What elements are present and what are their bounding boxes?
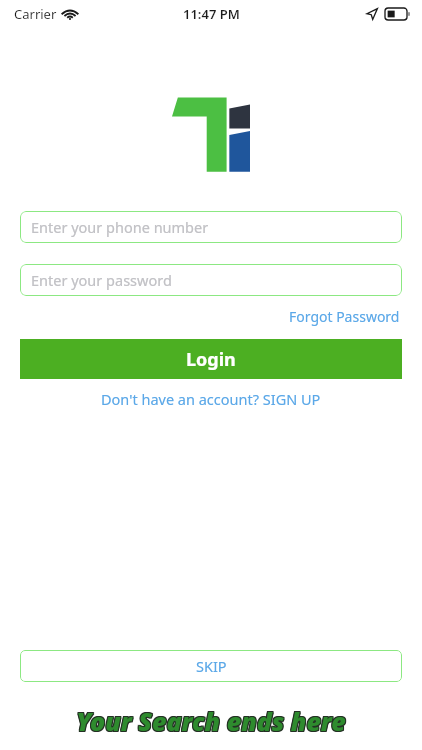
staticText: Carrier <box>14 5 57 23</box>
staticText: Login <box>186 347 236 372</box>
staticText: Your Search ends here <box>75 704 345 738</box>
staticText: Your Search ends here <box>76 704 346 738</box>
staticText: Enter your password <box>31 270 172 290</box>
staticText: Your Search ends here <box>76 705 346 739</box>
button[interactable]: Enter your phone number <box>20 211 402 243</box>
staticText: Don't have an account? SIGN UP <box>101 389 321 409</box>
staticText: Your Search ends here <box>75 705 345 739</box>
staticText: Your Search ends here <box>75 703 345 737</box>
staticText: Your Search ends here <box>76 703 346 737</box>
staticText: Enter your phone number <box>31 217 209 237</box>
staticText: Your Search ends here <box>77 705 347 739</box>
button[interactable]: Enter your password <box>20 264 402 296</box>
button[interactable]: SKIP <box>20 650 402 682</box>
staticText: 11:47 PM <box>183 5 240 23</box>
staticText: SKIP <box>196 656 227 676</box>
staticText: Your Search ends here <box>77 703 347 737</box>
button[interactable]: Don't have an account? SIGN UP <box>97 387 325 411</box>
staticText: Forgot Password <box>289 307 400 326</box>
button[interactable]: Forgot Password <box>287 305 402 328</box>
button[interactable]: Login <box>20 339 402 379</box>
staticText: Your Search ends here <box>77 704 347 738</box>
